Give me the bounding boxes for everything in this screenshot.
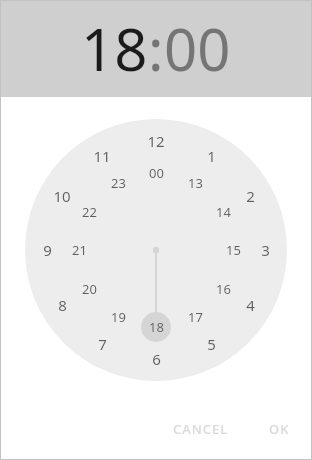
button[interactable]: 5: [195, 328, 227, 360]
staticText: 00: [164, 9, 231, 88]
button[interactable]: CANCEL: [165, 414, 237, 444]
button[interactable]: 3: [249, 234, 281, 266]
button[interactable]: 2: [234, 180, 266, 212]
button[interactable]: 22: [73, 196, 105, 228]
button[interactable]: 00: [164, 9, 231, 88]
staticText: CANCEL: [173, 420, 229, 438]
button[interactable]: 14: [207, 196, 239, 228]
button[interactable]: 18: [81, 9, 148, 88]
staticText: 14: [216, 203, 231, 221]
staticText: 9: [43, 240, 52, 260]
staticText: 22: [82, 203, 97, 221]
button[interactable]: 00: [140, 157, 172, 189]
staticText: :: [148, 9, 164, 88]
staticText: 8: [58, 295, 67, 315]
button[interactable]: 7: [86, 328, 118, 360]
staticText: OK: [269, 420, 290, 438]
staticText: 12: [147, 131, 165, 151]
staticText: 10: [53, 186, 71, 206]
button[interactable]: 1: [195, 140, 227, 172]
button[interactable]: 12: [140, 125, 172, 157]
staticText: 15: [226, 241, 241, 259]
button[interactable]: 19: [102, 301, 134, 333]
button[interactable]: 20: [73, 273, 105, 305]
button[interactable]: 23: [102, 167, 134, 199]
button[interactable]: 16: [207, 273, 239, 305]
staticText: 5: [207, 334, 216, 354]
button[interactable]: 18: [140, 311, 172, 343]
staticText: 1: [207, 146, 216, 166]
staticText: 3: [261, 240, 270, 260]
button[interactable]: 10: [46, 180, 78, 212]
staticText: 18: [81, 9, 148, 88]
staticText: 17: [188, 308, 203, 326]
staticText: 7: [98, 334, 107, 354]
staticText: 16: [216, 280, 231, 298]
staticText: 11: [93, 146, 111, 166]
staticText: 21: [72, 241, 87, 259]
button[interactable]: 13: [179, 167, 211, 199]
staticText: 19: [111, 308, 126, 326]
staticText: 2: [246, 186, 255, 206]
staticText: 13: [188, 174, 203, 192]
button[interactable]: 4: [234, 289, 266, 321]
staticText: 4: [246, 295, 255, 315]
button[interactable]: 6: [140, 343, 172, 375]
staticText: 20: [82, 280, 97, 298]
button[interactable]: 11: [86, 140, 118, 172]
button[interactable]: 15: [217, 234, 249, 266]
button[interactable]: 9: [31, 234, 63, 266]
staticText: 00: [149, 164, 164, 182]
button[interactable]: 21: [63, 234, 95, 266]
staticText: 18: [149, 318, 164, 336]
staticText: 23: [111, 174, 126, 192]
staticText: 6: [152, 349, 161, 369]
button[interactable]: OK: [261, 414, 298, 444]
button[interactable]: 8: [46, 289, 78, 321]
button[interactable]: 17: [179, 301, 211, 333]
